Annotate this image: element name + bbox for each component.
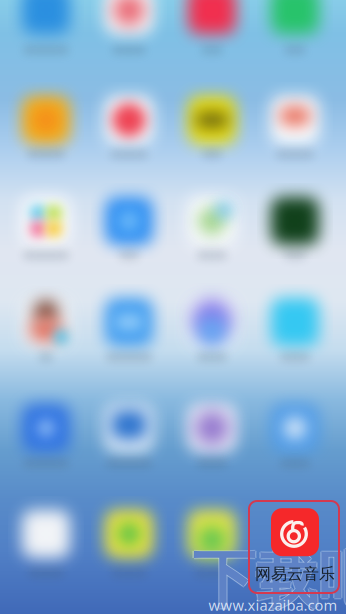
button[interactable]: 网易云音乐 — [251, 500, 339, 592]
staticText: 下载吧 — [194, 541, 346, 614]
staticText: 下载吧 — [192, 543, 346, 614]
staticText: www.xiazaiba.com — [208, 595, 337, 614]
staticText: 下载吧 — [192, 540, 346, 614]
staticText: 下载吧 — [191, 541, 346, 614]
staticText: 下载吧 — [192, 541, 346, 614]
staticText: 网易云音乐 — [255, 564, 335, 584]
